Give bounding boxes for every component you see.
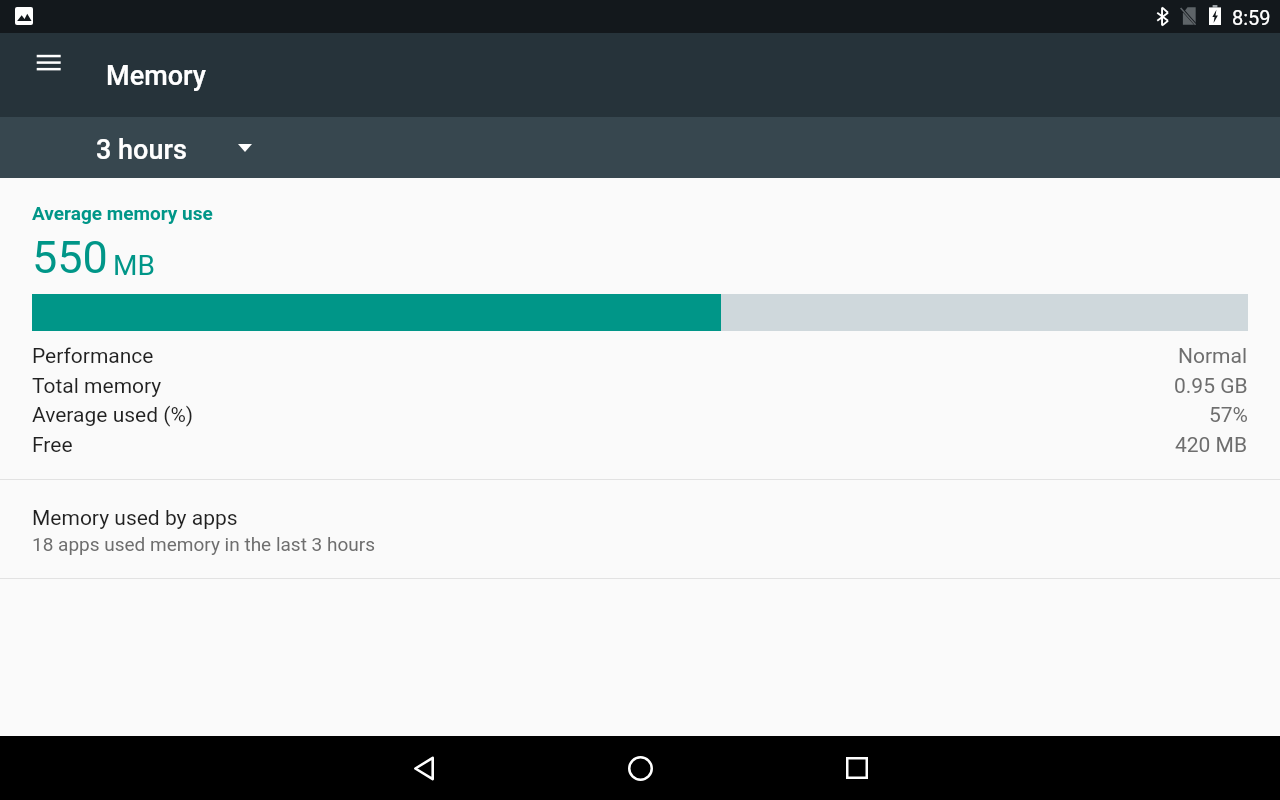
button[interactable]: Total memory [0,371,1280,401]
staticText: 550 [32,231,108,284]
staticText: 8:59 [1232,6,1271,29]
button[interactable]: Home [608,736,672,800]
staticText: 3 hours [96,134,187,166]
staticText: 18 apps used memory in the last 3 hours [32,533,375,555]
staticText: Total memory [32,374,162,399]
staticText: 420 MB [1175,433,1248,458]
button[interactable]: Performance [0,341,1280,371]
button[interactable]: 3 hours [96,119,252,180]
staticText: Average used (%) [32,403,194,428]
button[interactable]: Open navigation menu [24,38,72,86]
button[interactable]: Back [391,736,455,800]
button[interactable]: Recent apps [825,736,889,800]
staticText: MB [113,249,155,282]
staticText: Normal [1178,344,1248,369]
staticText: 57% [1209,403,1248,428]
staticText: Free [32,433,73,458]
staticText: Performance [32,344,154,369]
button[interactable]: Memory used by apps [0,480,1280,579]
staticText: Average memory use [32,202,213,224]
staticText: 0.95 GB [1174,374,1248,399]
button[interactable]: Average used (%) [0,400,1280,430]
staticText: Memory used by apps [32,506,238,531]
staticText: Memory [106,60,206,92]
button[interactable]: Free [0,430,1280,460]
